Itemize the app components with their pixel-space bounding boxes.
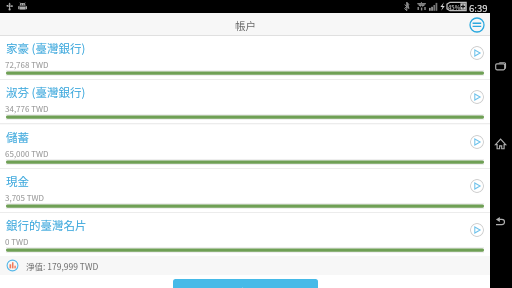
staticText: 銀行的臺灣名片 [6,217,87,234]
staticText: 3,705 TWD [5,192,45,204]
staticText: 72,768 TWD [5,59,49,71]
staticText: 現金 [6,173,29,190]
staticText: 新增帳戶 [220,285,260,288]
button[interactable]: 家豪 (臺灣銀行) [0,36,490,80]
staticText: 儲蓄 [6,129,29,146]
button[interactable]: 銀行的臺灣名片 [0,213,490,257]
button[interactable]: Account detail [470,46,484,60]
staticText: 6:39 [469,1,488,14]
button[interactable]: 新增帳戶 [173,279,318,288]
button[interactable]: Home [490,133,512,155]
staticText: 0 TWD [5,236,29,248]
button[interactable]: Account detail [470,135,484,149]
button[interactable]: Account detail [470,179,484,193]
staticText: 帳户 [235,18,256,33]
button[interactable]: Back [490,211,512,233]
button[interactable]: Recent apps [490,56,512,78]
button[interactable]: Account detail [470,90,484,104]
staticText: 家豪 (臺灣銀行) [6,40,86,57]
staticText: 淨值: 179,999 TWD [26,260,99,272]
button[interactable]: 淨值: 179,999 TWD [6,259,99,272]
button[interactable]: 淑芬 (臺灣銀行) [0,80,490,124]
button[interactable]: 現金 [0,169,490,213]
button[interactable]: Menu [468,16,486,34]
button[interactable]: 儲蓄 [0,125,490,169]
staticText: 34,776 TWD [5,103,49,115]
button[interactable]: Account detail [470,223,484,237]
staticText: 45% [448,3,461,12]
staticText: 65,000 TWD [5,148,49,160]
staticText: 淑芬 (臺灣銀行) [6,84,86,101]
